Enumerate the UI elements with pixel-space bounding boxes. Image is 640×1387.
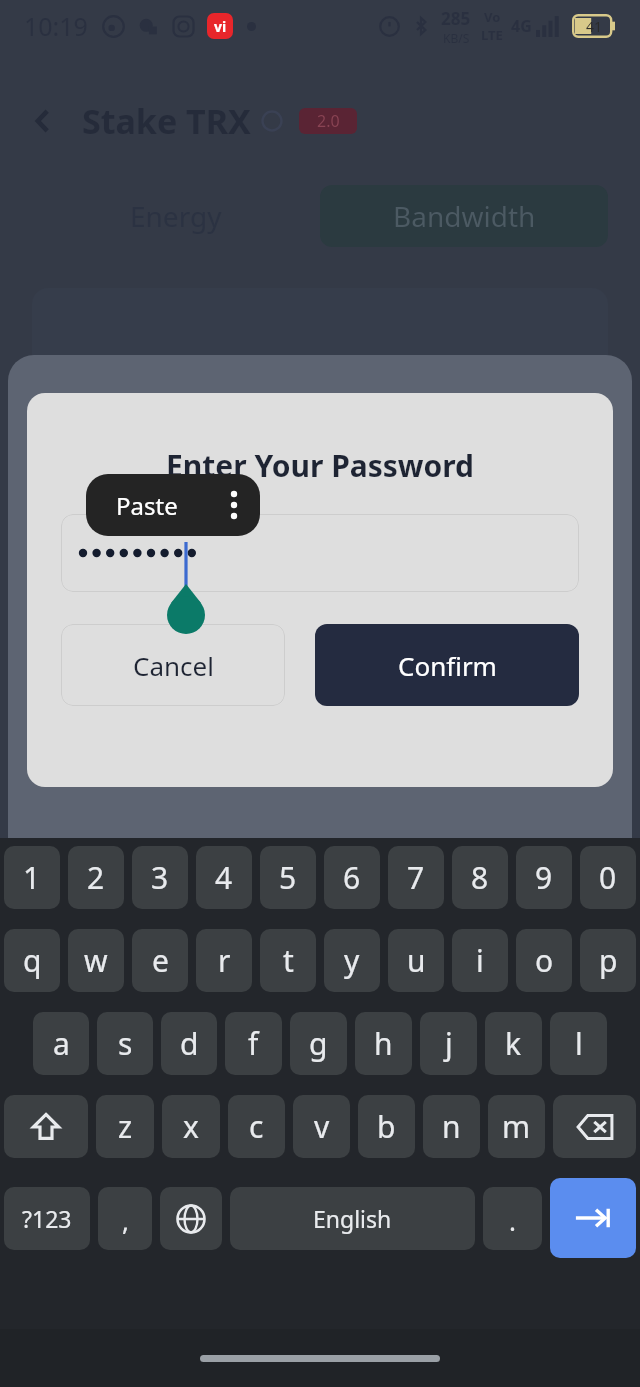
staticText: 41 — [586, 17, 603, 36]
staticText: LTE — [481, 26, 503, 44]
button[interactable]: More options — [208, 474, 260, 536]
staticText: Enter Your Password — [27, 445, 613, 486]
button[interactable]: s — [97, 1012, 153, 1075]
button[interactable]: Enter — [550, 1178, 636, 1258]
button[interactable]: a — [33, 1012, 89, 1075]
button[interactable]: p — [580, 929, 636, 992]
staticText: 10 Bandwidth — [441, 780, 604, 814]
staticText: w — [84, 940, 108, 981]
staticText: Account — [36, 818, 120, 848]
staticText: x — [183, 1106, 199, 1147]
staticText: g — [309, 1023, 328, 1064]
button[interactable]: m — [488, 1095, 545, 1158]
staticText: b — [377, 1106, 396, 1147]
staticText: 2.0 — [317, 110, 340, 132]
button[interactable]: y — [324, 929, 380, 992]
staticText: e — [152, 940, 169, 981]
staticText: v — [314, 1106, 330, 1147]
button[interactable]: . — [483, 1187, 542, 1250]
button[interactable]: Bandwidth — [320, 185, 608, 247]
button[interactable]: b — [358, 1095, 415, 1158]
staticText: Resources Gained — [36, 780, 247, 814]
staticText: t — [283, 940, 294, 981]
button[interactable]: 1 — [4, 846, 60, 909]
staticText: c — [249, 1106, 264, 1147]
button[interactable]: 3 — [132, 846, 188, 909]
staticText: f — [248, 1023, 259, 1064]
staticText: KB/S — [443, 30, 470, 46]
button[interactable]: , — [98, 1187, 152, 1250]
button[interactable]: Shift — [4, 1095, 88, 1158]
button[interactable]: Cancel — [61, 624, 285, 706]
staticText: i — [476, 940, 484, 981]
button[interactable]: Confirm — [315, 624, 579, 706]
staticText: English — [313, 1203, 392, 1234]
button[interactable]: g — [290, 1012, 347, 1075]
staticText: m — [502, 1106, 531, 1147]
staticText: 10:19 — [24, 9, 88, 43]
staticText: 6 — [343, 857, 361, 898]
button[interactable]: 2 — [68, 846, 124, 909]
staticText: k — [505, 1023, 522, 1064]
button[interactable]: d — [161, 1012, 217, 1075]
button[interactable]: x — [162, 1095, 220, 1158]
staticText: j — [445, 1023, 453, 1064]
staticText: Energy — [130, 197, 222, 235]
staticText: 3 — [151, 857, 169, 898]
button[interactable] — [61, 514, 579, 592]
staticText: Confirm — [398, 648, 497, 683]
staticText: Current Acct — [475, 818, 604, 848]
staticText: 7 — [407, 857, 425, 898]
button[interactable]: r — [196, 929, 252, 992]
button[interactable]: n — [423, 1095, 480, 1158]
button[interactable]: ?123 — [4, 1187, 90, 1250]
staticText: , — [122, 1203, 129, 1238]
button[interactable]: 5 — [260, 846, 316, 909]
button[interactable]: 4 — [196, 846, 252, 909]
button[interactable]: 7 — [388, 846, 444, 909]
button[interactable]: 6 — [324, 846, 380, 909]
button[interactable]: Backspace — [553, 1095, 636, 1158]
button[interactable]: u — [388, 929, 444, 992]
button[interactable]: Paste — [86, 474, 208, 536]
staticText: Paste — [116, 489, 178, 522]
staticText: z — [118, 1106, 133, 1147]
staticText: h — [374, 1023, 393, 1064]
button[interactable]: f — [225, 1012, 282, 1075]
staticText: l — [575, 1023, 583, 1064]
staticText: 9 — [535, 857, 553, 898]
staticText: . — [509, 1203, 516, 1238]
button[interactable]: i — [452, 929, 508, 992]
staticText: Cancel — [133, 648, 214, 683]
staticText: s — [118, 1023, 133, 1064]
button[interactable]: 9 — [516, 846, 572, 909]
button[interactable]: v — [293, 1095, 350, 1158]
button[interactable]: English — [230, 1187, 475, 1250]
button[interactable]: c — [228, 1095, 285, 1158]
button[interactable]: j — [420, 1012, 477, 1075]
button[interactable]: l — [550, 1012, 607, 1075]
staticText: 1 — [23, 857, 41, 898]
button[interactable]: 8 — [452, 846, 508, 909]
staticText: d — [180, 1023, 199, 1064]
button[interactable]: o — [516, 929, 572, 992]
button[interactable]: h — [355, 1012, 412, 1075]
button[interactable]: e — [132, 929, 188, 992]
staticText: r — [218, 940, 231, 981]
button[interactable]: t — [260, 929, 316, 992]
staticText: Stake TRX — [82, 98, 251, 144]
button[interactable]: Back — [18, 96, 68, 146]
staticText: 4 — [215, 857, 233, 898]
staticText: 285 — [441, 7, 471, 30]
staticText: 0 — [599, 857, 617, 898]
button[interactable]: 0 — [580, 846, 636, 909]
button[interactable]: q — [4, 929, 60, 992]
button[interactable]: Change language — [160, 1187, 222, 1250]
staticText: q — [23, 940, 42, 981]
staticText: p — [599, 940, 618, 981]
button[interactable]: z — [96, 1095, 154, 1158]
button[interactable]: k — [485, 1012, 542, 1075]
staticText: Vo — [484, 8, 501, 26]
button[interactable]: w — [68, 929, 124, 992]
